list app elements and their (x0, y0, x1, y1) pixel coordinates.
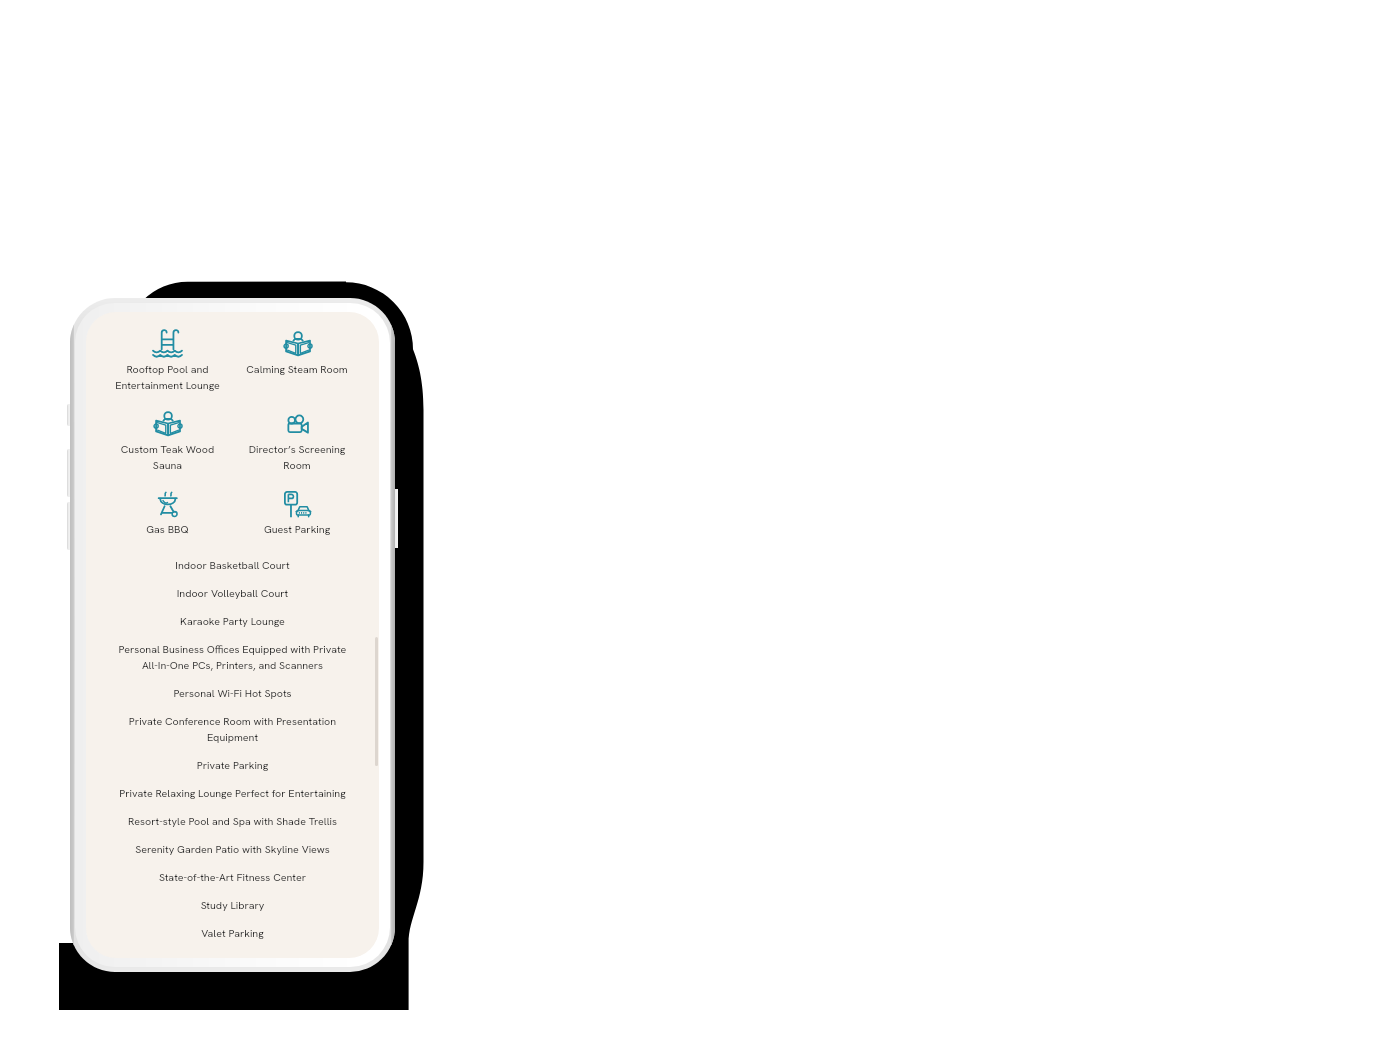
staticText: Indoor Volleyball Court (113, 585, 352, 601)
other: Barbecue (153, 489, 182, 518)
staticText: Private Parking (113, 757, 352, 773)
button[interactable]: Indoor Basketball Court (113, 551, 352, 579)
button[interactable]: Study Library (113, 891, 352, 919)
button[interactable]: Resort-style Pool and Spa with Shade Tre… (113, 807, 352, 835)
button[interactable]: Private Parking (113, 751, 352, 779)
button[interactable]: Parking (232, 481, 362, 545)
button[interactable]: Personal Wi-Fi Hot Spots (113, 679, 352, 707)
button[interactable]: Pool (103, 321, 232, 401)
staticText: State-of-the-Art Fitness Center (113, 869, 352, 885)
staticText: Resort-style Pool and Spa with Shade Tre… (113, 813, 352, 829)
button[interactable]: Screening room (232, 401, 362, 481)
staticText: Calming Steam Room (232, 361, 362, 377)
staticText: Custom Teak Wood Sauna (103, 441, 232, 473)
staticText: Valet Parking (113, 925, 352, 941)
button[interactable]: Private Conference Room with Presentatio… (113, 707, 352, 751)
button[interactable]: Private Relaxing Lounge Perfect for Ente… (113, 779, 352, 807)
button[interactable]: Karaoke Party Lounge (113, 607, 352, 635)
button[interactable]: Sauna (103, 401, 232, 481)
other: Pool (153, 329, 182, 358)
staticText: Karaoke Party Lounge (113, 613, 352, 629)
button[interactable]: Sauna (232, 321, 362, 385)
staticText: Indoor Basketball Court (113, 557, 352, 573)
button[interactable]: Indoor Volleyball Court (113, 579, 352, 607)
staticText: Director’s Screening Room (232, 441, 362, 473)
staticText: Rooftop Pool and Entertainment Lounge (103, 361, 232, 393)
button[interactable]: Serenity Garden Patio with Skyline Views (113, 835, 352, 863)
staticText: Study Library (113, 897, 352, 913)
button[interactable]: Barbecue (103, 481, 232, 545)
button[interactable]: Valet Parking (113, 919, 352, 947)
staticText: Guest Parking (232, 521, 362, 537)
staticText: Private Conference Room with Presentatio… (113, 713, 352, 745)
staticText: Personal Business Offices Equipped with … (113, 641, 352, 673)
other: Screening room (283, 409, 312, 438)
staticText: Private Relaxing Lounge Perfect for Ente… (113, 785, 352, 801)
other: Sauna (153, 409, 182, 438)
staticText: Gas BBQ (103, 521, 232, 537)
other: Parking (283, 489, 312, 518)
staticText: Personal Wi-Fi Hot Spots (113, 685, 352, 701)
button[interactable]: Personal Business Offices Equipped with … (113, 635, 352, 679)
button[interactable]: State-of-the-Art Fitness Center (113, 863, 352, 891)
staticText: Serenity Garden Patio with Skyline Views (113, 841, 352, 857)
other: Sauna (283, 329, 312, 358)
